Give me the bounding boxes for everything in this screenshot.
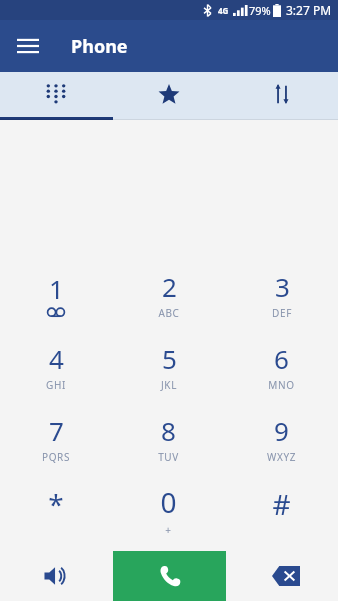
- staticText: 2: [162, 269, 177, 304]
- staticText: Phone: [71, 34, 128, 59]
- button[interactable]: 6: [225, 334, 338, 406]
- button[interactable]: Open navigation menu: [10, 28, 46, 64]
- button[interactable]: Call logs tab: [225, 72, 338, 120]
- button[interactable]: 2: [112, 262, 225, 334]
- button[interactable]: 8: [112, 406, 225, 478]
- button[interactable]: #: [225, 478, 338, 550]
- button[interactable]: 1: [0, 262, 112, 334]
- staticText: 7: [49, 413, 64, 448]
- button[interactable]: 4: [0, 334, 112, 406]
- staticText: MNO: [268, 378, 295, 392]
- button[interactable]: Speaker: [34, 554, 78, 598]
- staticText: *: [48, 485, 64, 523]
- button[interactable]: 5: [112, 334, 225, 406]
- staticText: 3: [275, 269, 290, 304]
- staticText: GHI: [46, 378, 66, 392]
- staticText: 5: [162, 341, 177, 376]
- staticText: 6: [274, 341, 289, 376]
- staticText: 4: [49, 341, 64, 376]
- button[interactable]: 3: [225, 262, 338, 334]
- button[interactable]: 7: [0, 406, 112, 478]
- staticText: #: [272, 485, 291, 523]
- staticText: 1: [49, 271, 64, 306]
- button[interactable]: 9: [225, 406, 338, 478]
- button[interactable]: *: [0, 478, 112, 550]
- staticText: PQRS: [42, 450, 70, 464]
- staticText: JKL: [161, 378, 177, 392]
- staticText: WXYZ: [267, 450, 296, 464]
- staticText: 3:27 PM: [286, 2, 332, 18]
- button[interactable]: Call: [113, 551, 226, 601]
- button[interactable]: 0: [112, 478, 225, 550]
- staticText: +: [165, 523, 172, 537]
- staticText: DEF: [272, 306, 292, 320]
- staticText: 79%: [249, 3, 271, 18]
- staticText: 9: [274, 413, 289, 448]
- button[interactable]: Delete: [264, 554, 308, 598]
- staticText: 8: [161, 413, 176, 448]
- button[interactable]: Keypad tab: [0, 72, 112, 120]
- staticText: TUV: [158, 450, 179, 464]
- button[interactable]: Favourites tab: [112, 72, 225, 120]
- staticText: 0: [160, 483, 177, 521]
- staticText: 4G: [218, 5, 229, 16]
- staticText: ABC: [158, 306, 180, 320]
